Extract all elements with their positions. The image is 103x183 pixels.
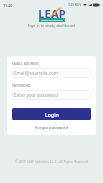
button[interactable]: Login <box>12 108 91 120</box>
staticText: Forgot password <box>35 125 69 131</box>
staticText: LEAP <box>38 6 66 18</box>
button[interactable]: Enter your password <box>14 90 89 100</box>
staticText: © 2019 LEAP Solutions L.L.C. All Rights … <box>0 160 103 164</box>
staticText: Login <box>45 111 59 118</box>
staticText: Sign in to study dashboard <box>0 23 103 28</box>
staticText: PASSWORD <box>12 84 31 88</box>
staticText: 11:40 <box>3 3 13 8</box>
staticText: 3.20 KB/s <box>68 3 82 7</box>
staticText: Email@example.com <box>14 70 58 76</box>
staticText: EMAIL ADDRESS <box>12 62 40 66</box>
staticText: LEARNING ENRICHMENT <box>41 19 63 21</box>
staticText: Enter your password <box>14 92 58 98</box>
button[interactable]: Forgot password <box>12 125 91 131</box>
button[interactable]: Email@example.com <box>14 68 89 78</box>
